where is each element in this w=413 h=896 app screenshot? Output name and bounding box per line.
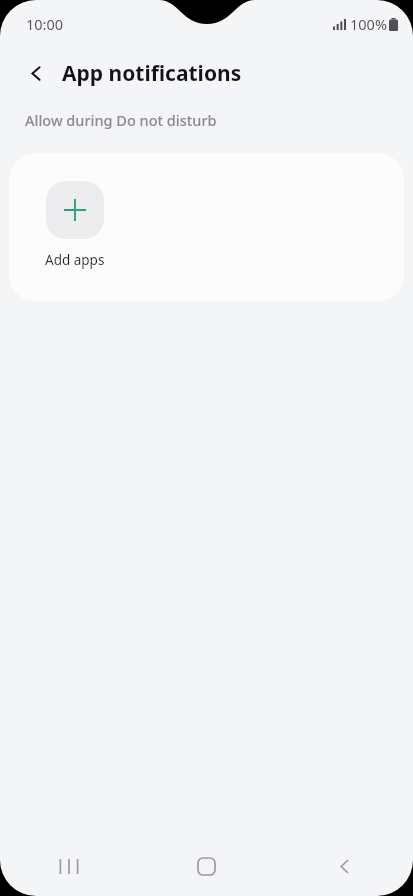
staticText: 10:00 bbox=[26, 14, 64, 34]
button[interactable]: Back bbox=[18, 55, 54, 91]
staticText: 100% bbox=[350, 14, 387, 34]
button[interactable]: Home bbox=[137, 836, 275, 896]
staticText: Allow during Do not disturb bbox=[25, 110, 217, 130]
button[interactable]: Back bbox=[275, 836, 413, 896]
staticText: App notifications bbox=[62, 59, 242, 88]
button[interactable]: Recents bbox=[0, 836, 137, 896]
staticText: Add apps bbox=[45, 251, 105, 269]
button[interactable]: Add apps bbox=[45, 181, 105, 269]
